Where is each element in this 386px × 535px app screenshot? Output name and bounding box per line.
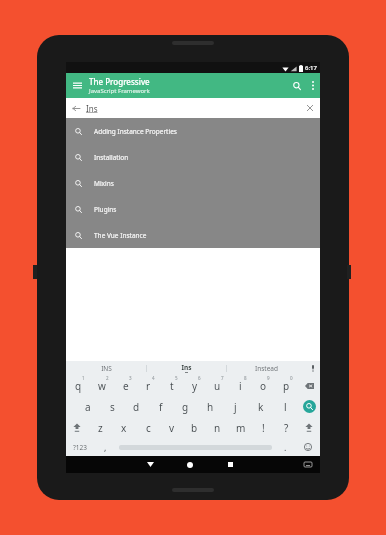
staticText: ! <box>262 421 265 435</box>
button[interactable]: i <box>229 375 252 396</box>
staticText: r <box>146 379 151 393</box>
staticText: Mixins <box>94 179 114 188</box>
button[interactable]: Back <box>66 100 86 117</box>
button[interactable]: Recent apps <box>210 456 250 473</box>
staticText: o <box>260 379 267 393</box>
button[interactable]: Installation <box>66 144 320 170</box>
staticText: 9 <box>267 375 270 381</box>
button[interactable]: The Vue Instance <box>66 222 320 248</box>
staticText: , <box>104 441 107 453</box>
button[interactable]: ? <box>275 417 298 438</box>
staticText: ? <box>284 421 289 435</box>
button[interactable]: t <box>160 375 183 396</box>
button[interactable]: Search <box>288 76 306 96</box>
button[interactable]: Shift <box>298 417 320 438</box>
button[interactable]: e <box>114 375 137 396</box>
button[interactable]: Hide keyboard <box>130 456 170 473</box>
button[interactable]: ! <box>252 417 275 438</box>
staticText: j <box>234 400 237 414</box>
button[interactable]: Backspace <box>298 375 320 396</box>
staticText: p <box>283 379 290 393</box>
button[interactable]: y <box>183 375 206 396</box>
button[interactable]: Emoji <box>296 438 320 456</box>
staticText: u <box>214 379 221 393</box>
button[interactable]: Switch keyboard <box>298 456 318 473</box>
staticText: JavaScript Framework <box>89 87 150 95</box>
button[interactable]: k <box>248 396 273 417</box>
staticText: s <box>110 400 115 414</box>
button[interactable]: f <box>148 396 173 417</box>
staticText: 5 <box>175 375 178 381</box>
button[interactable]: Adding Instance Properties <box>66 118 320 144</box>
staticText: ?123 <box>73 443 87 452</box>
staticText: The Progressive <box>89 76 150 87</box>
staticText: INS <box>101 364 112 373</box>
button[interactable]: More options <box>306 76 320 95</box>
button[interactable]: Plugins <box>66 196 320 222</box>
staticText: Instead <box>255 364 278 373</box>
staticText: k <box>258 400 264 414</box>
staticText: i <box>239 379 242 393</box>
button[interactable]: Clear query <box>300 99 320 117</box>
button[interactable]: v <box>160 417 183 438</box>
button[interactable]: Voice input <box>306 365 320 372</box>
staticText: 4 <box>152 375 155 381</box>
staticText: Installation <box>94 153 129 162</box>
button[interactable]: s <box>100 396 124 417</box>
staticText: The Vue Instance <box>94 231 147 240</box>
staticText: 0 <box>290 375 293 381</box>
button[interactable]: g <box>173 396 198 417</box>
button[interactable]: q <box>66 375 90 396</box>
button[interactable]: Ins <box>147 361 226 375</box>
staticText: Plugins <box>94 205 117 214</box>
button[interactable]: Shift <box>66 417 88 438</box>
button[interactable]: m <box>229 417 252 438</box>
staticText: b <box>191 421 198 435</box>
staticText: w <box>98 379 106 393</box>
button[interactable]: l <box>273 396 298 417</box>
staticText: d <box>133 400 140 414</box>
staticText: m <box>236 421 246 435</box>
button[interactable]: b <box>183 417 206 438</box>
staticText: g <box>182 400 189 414</box>
button[interactable]: h <box>198 396 223 417</box>
button[interactable]: Search <box>298 396 320 417</box>
button[interactable]: c <box>136 417 160 438</box>
button[interactable]: Open navigation menu <box>66 77 89 94</box>
staticText: Adding Instance Properties <box>94 127 177 136</box>
button[interactable]: r <box>137 375 160 396</box>
button[interactable]: p <box>275 375 298 396</box>
button[interactable]: o <box>252 375 275 396</box>
button[interactable]: Space <box>116 438 274 456</box>
button[interactable]: z <box>88 417 112 438</box>
staticText: Ins <box>181 363 192 372</box>
button[interactable]: Mixins <box>66 170 320 196</box>
staticText: 8 <box>244 375 247 381</box>
button[interactable]: w <box>90 375 114 396</box>
staticText: 3 <box>129 375 132 381</box>
button[interactable]: INS <box>66 361 146 375</box>
button[interactable]: x <box>112 417 136 438</box>
staticText: h <box>207 400 214 414</box>
button[interactable]: j <box>223 396 248 417</box>
button[interactable]: n <box>206 417 229 438</box>
button[interactable]: , <box>94 438 116 456</box>
staticText: t <box>170 379 174 393</box>
staticText: z <box>98 421 103 435</box>
staticText: 6:17 <box>305 64 317 72</box>
button[interactable]: . <box>274 438 296 456</box>
staticText: . <box>284 441 287 453</box>
button[interactable]: u <box>206 375 229 396</box>
staticText: v <box>169 421 175 435</box>
staticText: 2 <box>106 375 109 381</box>
button[interactable]: d <box>124 396 148 417</box>
staticText: n <box>214 421 221 435</box>
staticText: 7 <box>221 375 224 381</box>
button[interactable]: Instead <box>227 361 306 375</box>
button[interactable]: ?123 <box>66 438 94 456</box>
button[interactable]: Home <box>170 456 210 473</box>
button[interactable]: a <box>76 396 100 417</box>
staticText: l <box>284 400 287 414</box>
staticText: e <box>123 379 129 393</box>
staticText: 6 <box>198 375 201 381</box>
